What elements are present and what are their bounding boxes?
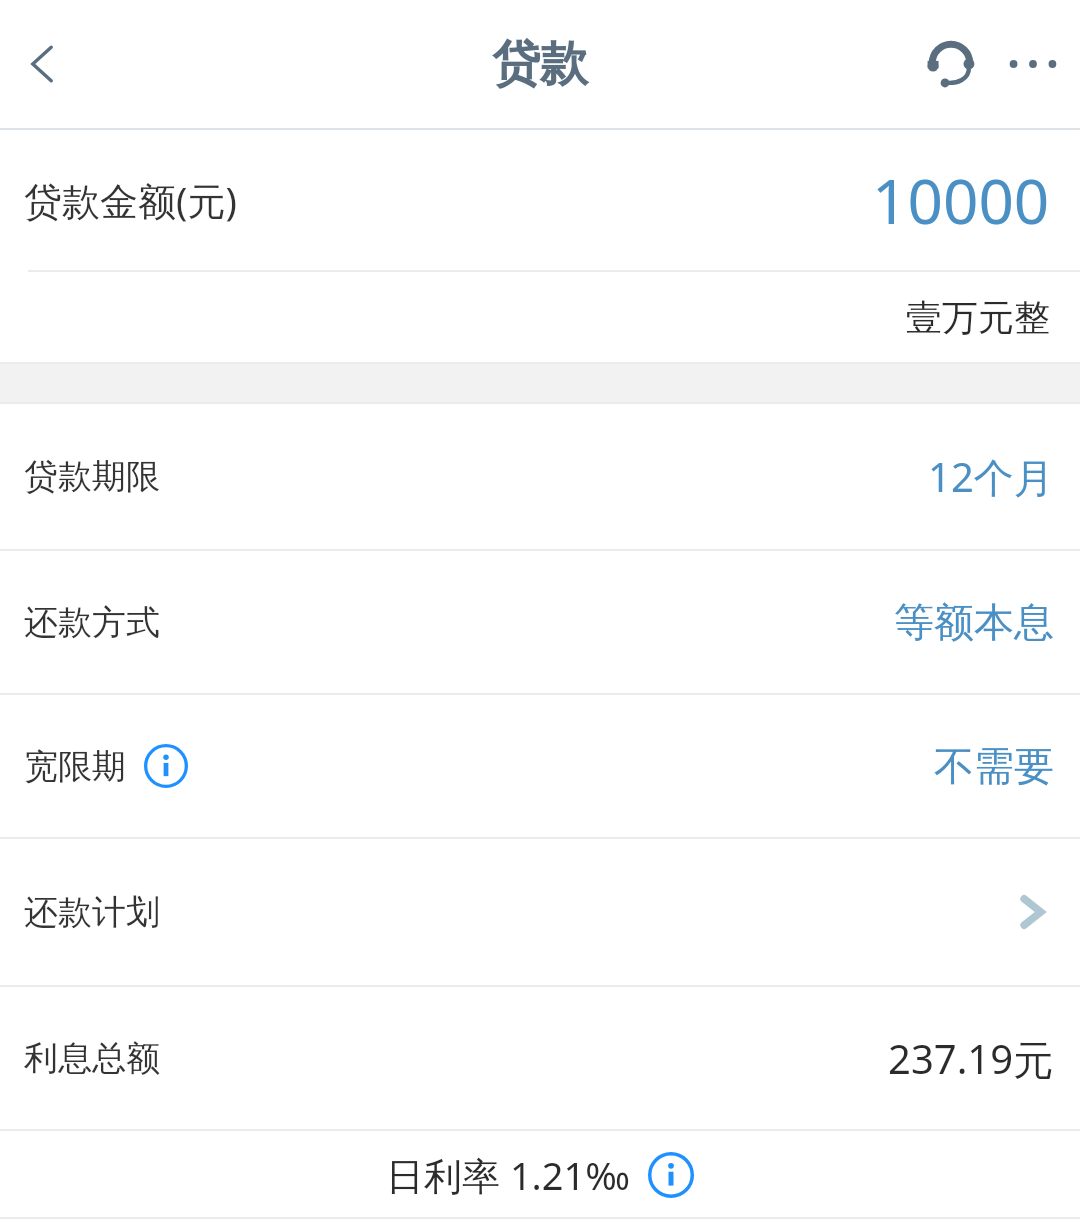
- button[interactable]: 贷款金额(元): [0, 130, 1080, 270]
- staticText: 壹万元整: [906, 295, 1050, 340]
- button[interactable]: Customer service: [912, 25, 990, 103]
- button[interactable]: 宽限期: [0, 695, 1080, 837]
- button[interactable]: 日利率 1.21‰: [0, 1131, 1080, 1219]
- button[interactable]: Back: [6, 26, 82, 102]
- button[interactable]: More options: [994, 25, 1072, 103]
- staticText: 10000: [872, 158, 1050, 242]
- staticText: 宽限期: [24, 745, 126, 788]
- staticText: 237.19元: [888, 1031, 1054, 1086]
- staticText: 等额本息: [894, 597, 1054, 647]
- staticText: 日利率 1.21‰: [386, 1149, 630, 1201]
- staticText: 12个月: [928, 449, 1054, 504]
- staticText: 不需要: [934, 741, 1054, 791]
- staticText: 还款方式: [24, 601, 160, 644]
- staticText: 还款计划: [24, 891, 160, 934]
- button[interactable]: 还款方式: [0, 551, 1080, 693]
- button[interactable]: 贷款期限: [0, 404, 1080, 549]
- staticText: 贷款期限: [24, 455, 160, 498]
- button[interactable]: 还款计划: [0, 839, 1080, 985]
- staticText: 利息总额: [24, 1037, 160, 1080]
- staticText: 贷款: [492, 34, 588, 94]
- staticText: 贷款金额(元): [24, 174, 237, 226]
- button[interactable]: 利息总额: [0, 987, 1080, 1129]
